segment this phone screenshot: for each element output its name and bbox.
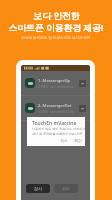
staticText: 취소 (62, 186, 70, 191)
staticText: 악성앱 탐지분석 및 유해사이트 실시간 탐지 (21, 35, 91, 40)
button[interactable]: More options (79, 105, 86, 112)
staticText: 검사 (34, 186, 42, 191)
staticText: 검사 후 최적화를 진행하시겠습니까? (32, 132, 83, 136)
staticText: 1. MessengerUp (38, 78, 71, 84)
button[interactable]: 검사 (26, 184, 50, 193)
staticText: 1.4MB com.android.de (38, 110, 74, 114)
staticText: 사용하지 않는 앱이 있습니다. 디바이스 (32, 127, 86, 131)
button[interactable]: 취소 (59, 138, 69, 143)
staticText: 스마트폰 이용환경 제공! (8, 22, 104, 34)
staticText: TouchEn mVaccine (32, 120, 77, 127)
button[interactable]: 취소 (54, 184, 78, 193)
staticText: 2. MessengerDet (38, 103, 72, 109)
button[interactable]: More options (79, 80, 86, 87)
staticText: 취소 (60, 138, 68, 143)
button[interactable]: 1. MessengerUp (21, 71, 90, 95)
staticText: 2.1MB com.android.up (38, 85, 74, 89)
button[interactable]: 확인 (73, 138, 83, 143)
staticText: 보다 안전한 (33, 10, 80, 22)
staticText: 확인 (74, 138, 82, 143)
button[interactable]: 2. MessengerDet (21, 96, 90, 120)
